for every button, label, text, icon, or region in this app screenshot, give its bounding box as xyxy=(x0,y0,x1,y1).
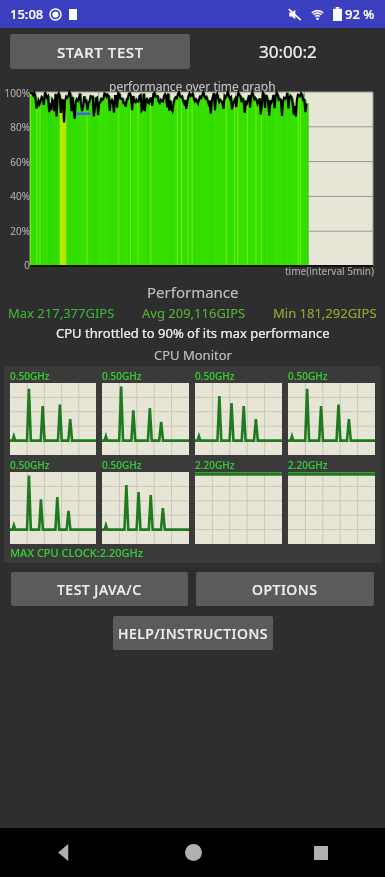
staticText: time(interval 5min) xyxy=(285,264,375,278)
staticText: 20% xyxy=(10,224,30,238)
staticText: 60% xyxy=(10,155,30,169)
staticText: CPU throttled to 90% of its max performa… xyxy=(56,324,330,342)
staticText: 30:00:2 xyxy=(259,40,317,63)
button[interactable]: START TEST xyxy=(10,34,190,69)
staticText: Performance xyxy=(147,282,239,302)
staticText: HELP/INSTRUCTIONS xyxy=(118,624,268,643)
staticText: 100% xyxy=(4,86,30,100)
staticText: Max 217,377GIPS xyxy=(8,304,115,322)
button[interactable]: OPTIONS xyxy=(196,572,374,606)
button[interactable]: TEST JAVA/C xyxy=(11,572,188,606)
staticText: TEST JAVA/C xyxy=(57,580,142,599)
staticText: Min 181,292GIPS xyxy=(273,304,377,322)
staticText: MAX CPU CLOCK:2.20GHz xyxy=(10,545,144,560)
staticText: OPTIONS xyxy=(252,580,318,599)
staticText: Avg 209,116GIPS xyxy=(142,304,246,322)
staticText: 0.50GHz xyxy=(288,369,328,383)
staticText: performance over time graph xyxy=(109,78,276,94)
staticText: 2.20GHz xyxy=(195,458,235,472)
staticText: 40% xyxy=(10,189,30,203)
staticText: CPU Monitor xyxy=(154,346,232,364)
staticText: 0.50GHz xyxy=(195,369,235,383)
staticText: 92 % xyxy=(345,5,375,23)
button[interactable]: HELP/INSTRUCTIONS xyxy=(113,616,273,650)
staticText: 0 xyxy=(24,258,30,272)
staticText: 0.50GHz xyxy=(102,458,142,472)
button[interactable]: Recent apps xyxy=(257,828,385,877)
button[interactable]: Back xyxy=(0,828,129,877)
staticText: 0.50GHz xyxy=(10,458,50,472)
staticText: 15:08 xyxy=(10,5,44,23)
staticText: 80% xyxy=(10,120,30,134)
staticText: 0.50GHz xyxy=(10,369,50,383)
button[interactable]: Home xyxy=(129,828,257,877)
staticText: START TEST xyxy=(57,42,144,62)
staticText: 0.50GHz xyxy=(102,369,142,383)
staticText: 2.20GHz xyxy=(288,458,328,472)
